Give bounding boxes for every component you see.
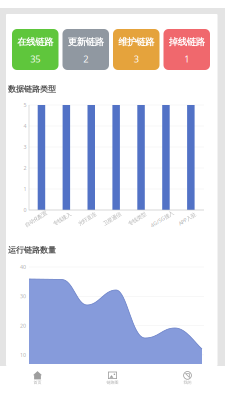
staticText: 1 bbox=[23, 185, 26, 193]
staticText: 30 bbox=[20, 293, 26, 300]
staticText: 10 bbox=[20, 351, 26, 358]
staticText: 4G/5G接入 bbox=[149, 215, 175, 222]
staticText: 运行链路数量 bbox=[8, 245, 56, 255]
staticText: 1 bbox=[184, 53, 189, 65]
staticText: 自动化配置 bbox=[23, 216, 48, 222]
staticText: 在线链路 bbox=[17, 36, 53, 48]
staticText: 4 bbox=[23, 122, 26, 130]
staticText: 数据链路类型 bbox=[8, 84, 56, 94]
staticText: 20 bbox=[20, 322, 26, 329]
staticText: 更新链路 bbox=[68, 36, 104, 48]
button[interactable]: 在线链路 bbox=[12, 29, 58, 70]
staticText: 专线类型 bbox=[127, 216, 147, 222]
staticText: APP入驻 bbox=[177, 215, 196, 222]
staticText: 掉线链路 bbox=[169, 36, 205, 48]
staticText: 专线接入 bbox=[52, 216, 72, 222]
staticText: 卫星通信 bbox=[102, 216, 122, 222]
staticText: 5 bbox=[23, 101, 26, 109]
staticText: 40 bbox=[20, 263, 26, 271]
button[interactable]: 首页 bbox=[0, 366, 75, 400]
staticText: 2 bbox=[23, 164, 26, 172]
staticText: 维护链路 bbox=[118, 36, 154, 48]
button[interactable]: 更新链路 bbox=[62, 29, 109, 70]
staticText: 链路图 bbox=[106, 380, 118, 385]
button[interactable]: 我的 bbox=[150, 366, 225, 400]
button[interactable]: 掉线链路 bbox=[163, 29, 210, 70]
staticText: 光纤直连 bbox=[77, 216, 97, 222]
staticText: 2 bbox=[83, 53, 88, 65]
button[interactable]: 链路图 bbox=[75, 366, 150, 400]
button[interactable]: 维护链路 bbox=[113, 29, 159, 70]
staticText: 我的 bbox=[183, 380, 191, 385]
staticText: 3 bbox=[134, 53, 139, 65]
staticText: 首页 bbox=[33, 380, 41, 385]
staticText: 35 bbox=[30, 53, 40, 65]
staticText: 0 bbox=[23, 206, 26, 214]
staticText: 3 bbox=[23, 143, 26, 151]
